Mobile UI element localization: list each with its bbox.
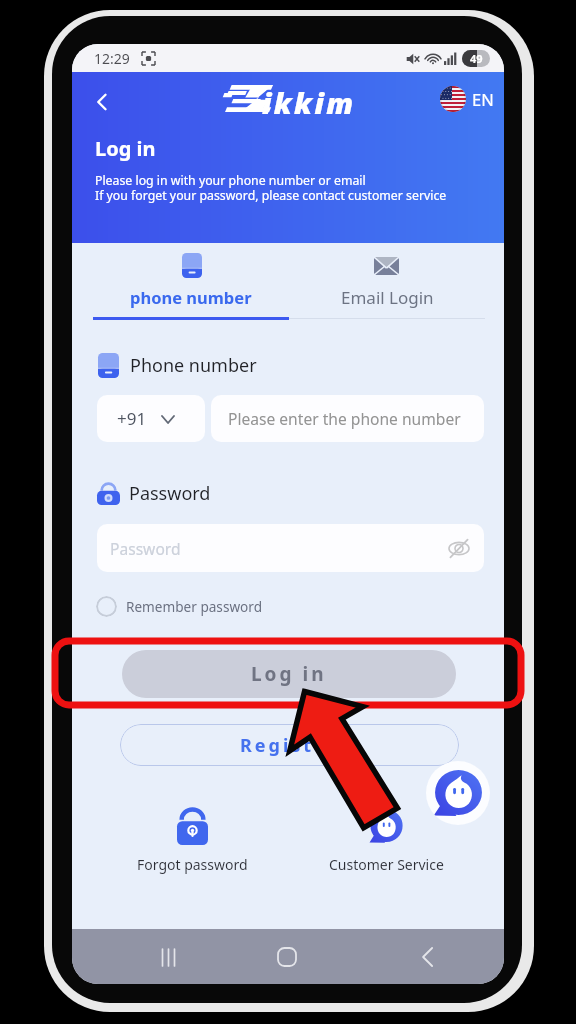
staticText: ikkim [262, 83, 356, 122]
staticText: Please log in with your phone number or … [95, 172, 447, 204]
staticText: 49 [470, 51, 483, 66]
staticText: Please enter the phone number [228, 408, 461, 429]
button[interactable]: Show password [443, 532, 475, 564]
button[interactable]: Language EN [440, 86, 494, 112]
staticText: Password [129, 481, 211, 506]
staticText: Phone number [130, 353, 257, 378]
button[interactable]: Please enter the phone number [211, 395, 484, 442]
staticText: Remember password [126, 597, 263, 616]
button[interactable]: Email Login [289, 243, 485, 321]
button[interactable]: +91 [97, 395, 205, 442]
button[interactable]: Log in [122, 650, 456, 698]
staticText: Register [240, 733, 339, 758]
staticText: Log in [251, 661, 327, 687]
staticText: phone number [130, 286, 252, 308]
button[interactable]: Register [120, 724, 459, 766]
button[interactable]: Remember password [96, 595, 263, 617]
button[interactable]: Recents [147, 936, 189, 978]
staticText: EN [472, 88, 494, 110]
staticText: Email Login [341, 286, 434, 309]
staticText: 12:29 [94, 49, 130, 68]
staticText: Log in [95, 135, 156, 162]
button[interactable]: Customer Service [306, 808, 466, 874]
button[interactable]: phone number [93, 243, 289, 321]
button[interactable]: Back [406, 936, 448, 978]
staticText: +91 [117, 407, 147, 430]
staticText: Customer Service [329, 855, 444, 874]
button[interactable]: Customer service chat [426, 761, 490, 825]
staticText: Password [110, 538, 181, 559]
button[interactable]: Password [97, 524, 484, 572]
button[interactable]: Back [80, 80, 124, 124]
button[interactable]: Home [266, 936, 308, 978]
staticText: Forgot password [137, 855, 248, 874]
button[interactable]: Forgot password [112, 808, 272, 874]
